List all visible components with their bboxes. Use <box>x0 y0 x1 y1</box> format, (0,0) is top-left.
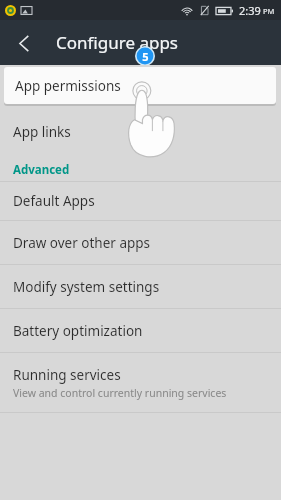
staticText: Running services <box>13 366 121 384</box>
button[interactable]: App permissions <box>4 67 276 104</box>
staticText: App permissions <box>15 77 121 95</box>
button[interactable]: App links <box>0 113 281 151</box>
staticText: App links <box>13 123 71 141</box>
staticText: Battery optimization <box>13 322 143 340</box>
staticText: Advanced <box>13 162 70 178</box>
staticText: Configure apps <box>56 31 179 54</box>
button[interactable]: Running services <box>0 353 281 412</box>
staticText: Modify system settings <box>13 278 160 296</box>
button[interactable]: Battery optimization <box>0 309 281 352</box>
button[interactable]: Modify system settings <box>0 265 281 308</box>
staticText: Default Apps <box>13 192 95 210</box>
staticText: 2:39 <box>239 3 261 18</box>
staticText: 5 <box>142 49 149 64</box>
staticText: Draw over other apps <box>13 234 151 252</box>
staticText: View and control currently running servi… <box>13 386 227 400</box>
button[interactable]: Draw over other apps <box>0 221 281 264</box>
staticText: PM <box>263 6 275 16</box>
button[interactable]: Back <box>6 25 42 61</box>
button[interactable]: Default Apps <box>0 182 281 220</box>
